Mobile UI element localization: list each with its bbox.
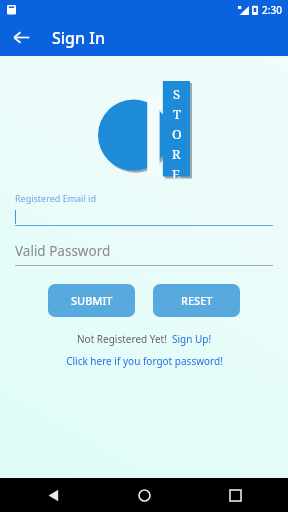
button[interactable]: Recent apps (220, 480, 250, 510)
button[interactable]: Back (38, 480, 68, 510)
button[interactable]: Registered Email id (15, 192, 273, 226)
button[interactable]: Valid Password (15, 242, 273, 266)
staticText: Valid Password (15, 242, 111, 260)
staticText: E (172, 165, 181, 178)
staticText: R (172, 145, 181, 163)
staticText: SUBMIT (71, 293, 113, 308)
staticText: S (173, 85, 181, 103)
button[interactable]: Back (5, 21, 38, 54)
button[interactable]: RESET (153, 284, 240, 317)
staticText: Not Registered Yet! (77, 332, 167, 346)
button[interactable]: SUBMIT (48, 284, 135, 317)
staticText: Sign Up! (172, 332, 212, 346)
staticText: Registered Email id (15, 192, 96, 204)
staticText: T (173, 105, 181, 123)
button[interactable]: Home (129, 480, 159, 510)
staticText: RESET (181, 293, 213, 308)
staticText: Click here if you forgot password! (66, 354, 223, 368)
button[interactable]: Sign Up! (172, 332, 212, 346)
staticText: O (172, 125, 182, 143)
button[interactable]: Click here if you forgot password! (66, 354, 223, 368)
staticText: Sign In (52, 27, 105, 49)
staticText: 2:30 (262, 3, 282, 17)
